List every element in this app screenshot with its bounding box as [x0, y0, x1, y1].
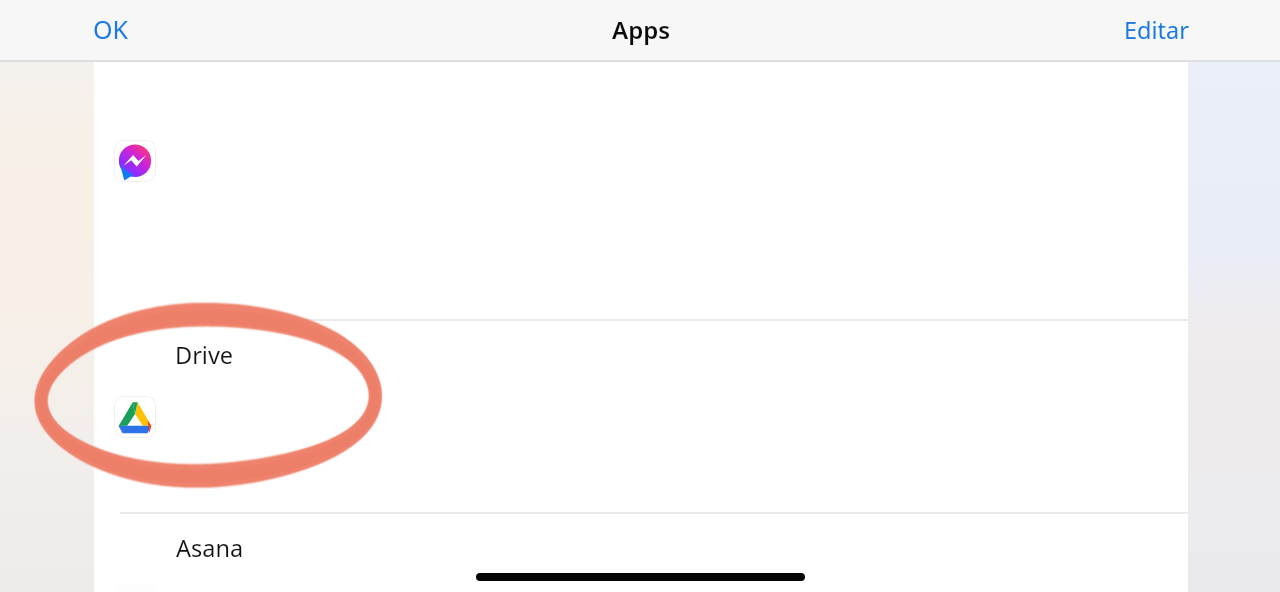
button[interactable]: OK [77, 4, 145, 58]
staticText: Editar [1124, 14, 1189, 46]
button[interactable]: Drive [94, 319, 1188, 513]
staticText: Drive [175, 339, 234, 371]
staticText: Apps [612, 13, 671, 46]
button[interactable]: Editar [1108, 5, 1205, 57]
button[interactable]: Asana [94, 513, 1188, 592]
button[interactable]: Messenger [114, 140, 156, 182]
staticText: OK [93, 12, 129, 46]
staticText: Asana [176, 532, 244, 564]
